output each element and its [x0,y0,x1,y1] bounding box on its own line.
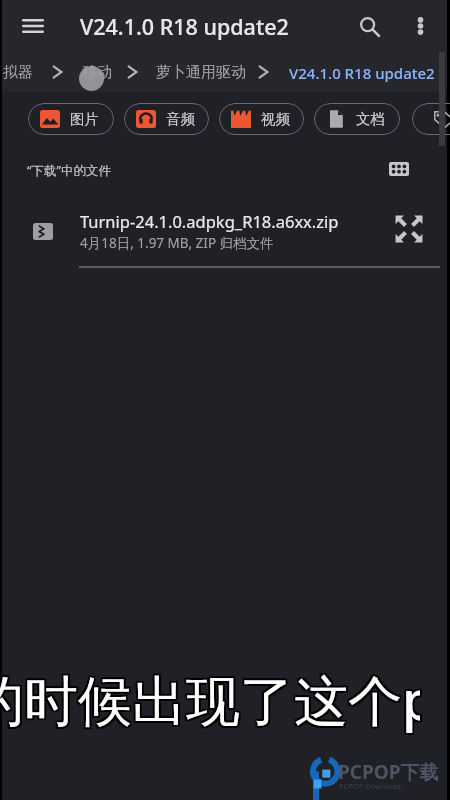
staticText: V24.1.0 R18 update2 [80,12,289,41]
button[interactable]: Navigation menu [11,4,55,48]
button[interactable]: More options [398,4,442,48]
button[interactable]: 视频 [219,103,304,135]
staticText: Turnip-24.1.0.adpkg_R18.a6xx.zip [80,210,339,232]
button[interactable]: 萝卜通用驱动 [156,63,246,82]
staticText: 的时候出现了这个pro [0,660,422,734]
button[interactable] [412,103,450,135]
button[interactable]: 拟器 [3,63,33,82]
button[interactable]: 音频 [124,103,209,135]
staticText: 的时候出现了这个pro [0,662,418,736]
staticText: 的时候出现了这个pro [0,662,420,736]
staticText: 图片 [70,110,99,128]
staticText: PCPOP下载 [338,759,439,785]
staticText: 的时候出现了这个pro [0,664,422,738]
staticText: 的时候出现了这个pro [0,660,420,734]
button[interactable]: Search [347,4,391,48]
staticText: 的时候出现了这个pro [0,664,420,738]
button[interactable]: 图片 [28,103,114,135]
button[interactable]: V24.1.0 R18 update2 [289,63,435,83]
staticText: 的时候出现了这个pro [0,664,418,738]
staticText: 音频 [166,110,195,128]
button[interactable]: 文档 [314,103,400,135]
button[interactable]: Expand file [388,205,430,253]
staticText: 文档 [356,110,385,128]
staticText: 视频 [261,110,290,128]
button[interactable]: 移动 [82,63,112,82]
staticText: 4月18日, 1.97 MB, ZIP 归档文件 [80,234,274,252]
staticText: PCPOP Download [339,781,401,791]
staticText: “下载”中的文件 [27,162,111,179]
button[interactable]: Switch to grid view [379,151,419,187]
staticText: 的时候出现了这个pro [0,662,422,736]
button[interactable]: Turnip-24.1.0.adpkg_R18.a6xx.zip [2,198,447,262]
staticText: 的时候出现了这个pro [0,660,418,734]
